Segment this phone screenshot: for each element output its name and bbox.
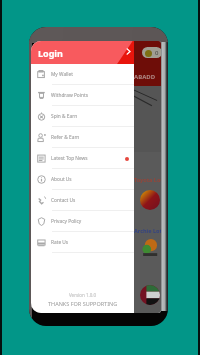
staticText: ABADD xyxy=(134,73,156,81)
staticText: 0 xyxy=(155,49,159,57)
staticText: My Wallet xyxy=(51,71,74,78)
button[interactable] xyxy=(140,285,160,305)
button[interactable]: Privacy Policy xyxy=(31,211,134,232)
staticText: Login xyxy=(38,47,63,59)
staticText: Archie Lottery xyxy=(134,227,161,234)
button[interactable]: 0 xyxy=(142,47,161,58)
staticText: Version 1.0.0 xyxy=(69,292,97,298)
button[interactable]: Latest Top News xyxy=(31,148,134,169)
button[interactable]: Login xyxy=(31,41,134,64)
staticText: Withdraw Points xyxy=(51,92,88,99)
staticText: Refer & Earn xyxy=(51,134,80,141)
button[interactable]: Spin & Earn xyxy=(31,106,134,127)
staticText: Latest Top News xyxy=(51,155,88,162)
staticText: Privacy Policy xyxy=(51,218,82,225)
button[interactable]: Refer & Earn xyxy=(31,127,134,148)
button[interactable]: About Us xyxy=(31,169,134,190)
staticText: Toyota Lottery xyxy=(134,176,161,183)
staticText: About Us xyxy=(51,176,72,183)
button[interactable] xyxy=(140,190,160,210)
button[interactable]: My Wallet xyxy=(31,64,134,85)
button[interactable]: Withdraw Points xyxy=(31,85,134,106)
staticText: Spin & Earn xyxy=(51,113,78,120)
button[interactable] xyxy=(141,238,159,256)
button[interactable]: Contact Us xyxy=(31,190,134,211)
staticText: Rate Us xyxy=(51,239,69,246)
staticText: THANKS FOR SUPPORTING xyxy=(48,300,118,307)
button[interactable]: Rate Us xyxy=(31,232,134,253)
staticText: Contact Us xyxy=(51,197,76,204)
other: Close drawer xyxy=(124,47,133,56)
